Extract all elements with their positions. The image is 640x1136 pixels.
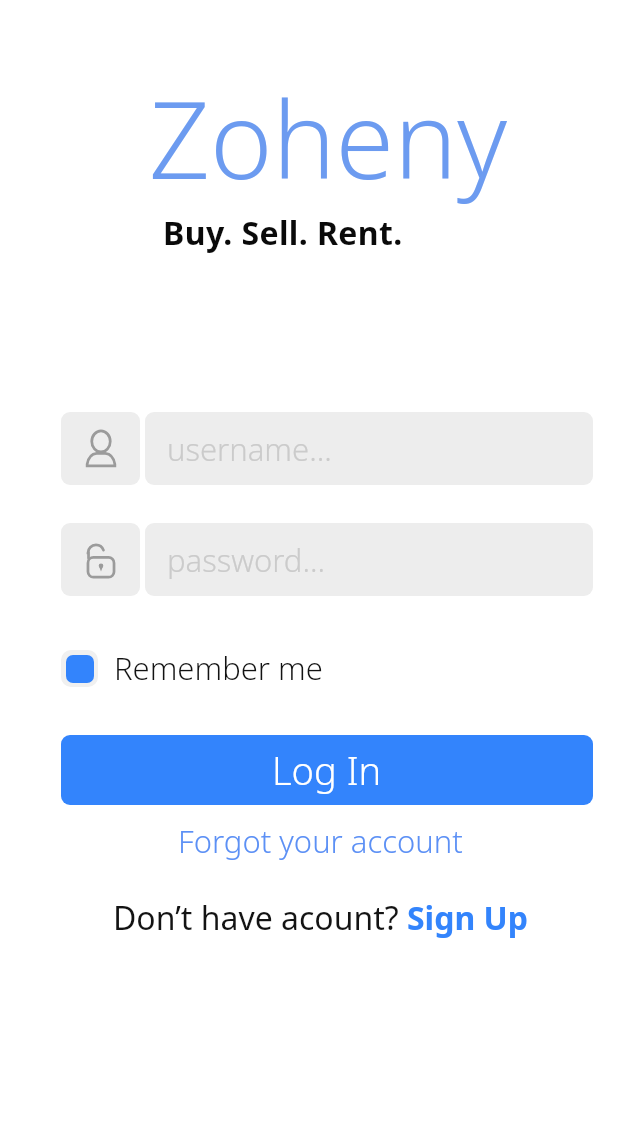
button[interactable]: Password	[61, 523, 140, 596]
button[interactable]: Remember me	[61, 647, 323, 689]
staticText: username...	[167, 428, 332, 470]
staticText: Don’t have acount? Sign Up	[113, 896, 528, 940]
staticText: Remember me	[114, 647, 323, 689]
staticText: Forgot your account	[178, 820, 463, 862]
staticText: Zoheny	[149, 66, 507, 210]
button[interactable]: Don’t have acount? Sign Up	[107, 894, 534, 942]
button[interactable]: Log In	[61, 735, 593, 805]
staticText: password...	[167, 539, 326, 581]
button[interactable]: username...	[145, 412, 593, 485]
button[interactable]: Forgot your account	[172, 818, 469, 864]
button[interactable]: Username	[61, 412, 140, 485]
button[interactable]: password...	[145, 523, 593, 596]
staticText: Buy. Sell. Rent.	[163, 211, 403, 255]
staticText: Log In	[272, 744, 382, 796]
